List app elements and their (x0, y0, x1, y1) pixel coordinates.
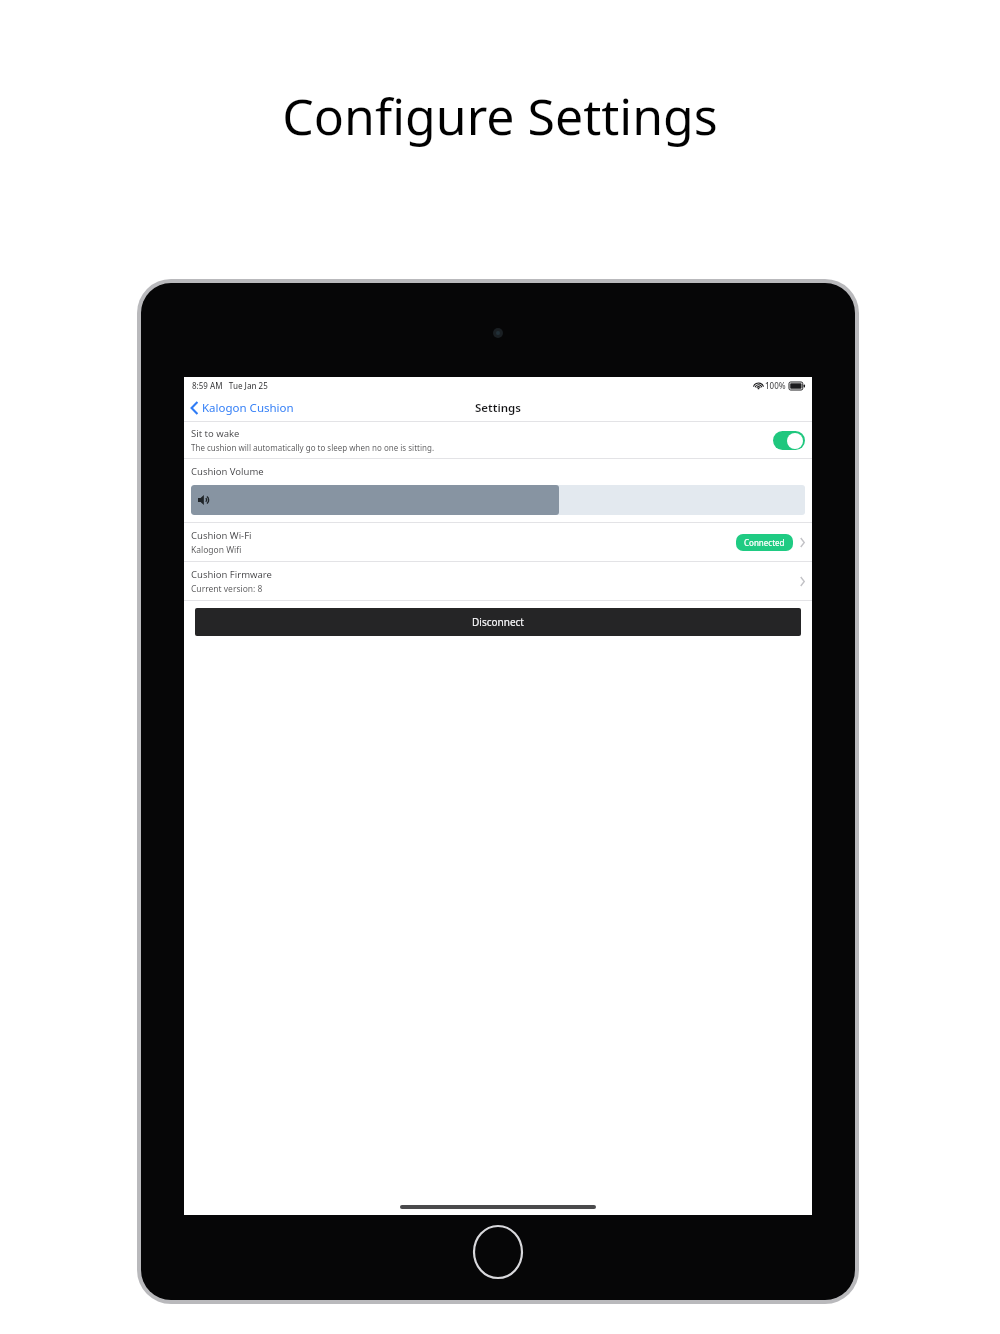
staticText: Connected (744, 537, 785, 548)
button[interactable]: Kalogon Cushion (184, 397, 302, 419)
staticText: Current version: 8 (191, 583, 263, 595)
staticText: Configure Settings (282, 82, 718, 150)
staticText: Settings (475, 400, 521, 416)
button[interactable]: Sit to wake (184, 422, 812, 458)
staticText: 8:59 AM Tue Jan 25 (192, 380, 268, 391)
staticText: Kalogon Cushion (202, 400, 294, 416)
button[interactable]: Cushion Wi-Fi (184, 523, 812, 561)
other: Sit to wake toggle, on (773, 431, 805, 450)
staticText: Cushion Firmware (191, 568, 272, 581)
staticText: Cushion Wi-Fi (191, 529, 252, 542)
button[interactable]: Cushion volume slider (191, 485, 805, 515)
staticText: Disconnect (472, 615, 524, 629)
staticText: 100% (765, 380, 786, 391)
staticText: Kalogon Wifi (191, 544, 242, 556)
staticText: Cushion Volume (191, 465, 264, 478)
button[interactable]: Disconnect (195, 608, 801, 636)
button[interactable]: Cushion Firmware (184, 562, 812, 600)
staticText: The cushion will automatically go to sle… (191, 442, 435, 453)
staticText: Sit to wake (191, 427, 240, 440)
